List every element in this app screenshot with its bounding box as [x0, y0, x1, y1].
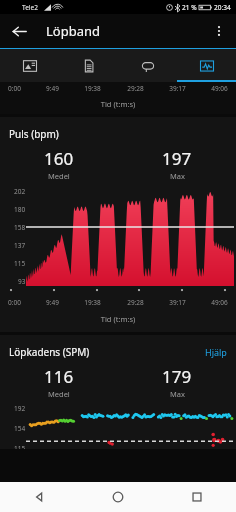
staticText: 93 — [18, 277, 26, 286]
staticText: 0:00 — [8, 84, 21, 93]
button[interactable]: Home — [78, 482, 157, 512]
staticText: 20:34 — [214, 3, 231, 12]
staticText: 29:28 — [127, 84, 144, 93]
staticText: 115 — [14, 259, 26, 268]
button[interactable]: Hjälp — [205, 346, 227, 358]
staticText: Max — [170, 171, 185, 181]
staticText: 197 — [162, 147, 192, 170]
staticText: 49:06 — [211, 298, 228, 307]
staticText: 29:28 — [127, 298, 144, 307]
staticText: 21 % — [182, 3, 197, 12]
button[interactable]: Laps — [118, 49, 177, 82]
button[interactable]: Recents — [157, 482, 236, 512]
staticText: Max — [170, 389, 185, 399]
staticText: 39:17 — [169, 84, 186, 93]
staticText: 158 — [14, 223, 26, 232]
staticText: 39:17 — [169, 298, 186, 307]
staticText: Löpkadens (SPM) — [9, 345, 205, 359]
staticText: 192 — [14, 404, 26, 413]
staticText: 116 — [44, 365, 74, 388]
staticText: 179 — [162, 365, 192, 388]
staticText: 19:38 — [84, 84, 101, 93]
staticText: Tid (t:m:s) — [0, 99, 236, 109]
button[interactable]: Details — [59, 49, 118, 82]
button[interactable]: Back — [0, 482, 78, 512]
button[interactable]: Back — [6, 18, 32, 44]
button[interactable]: Charts — [177, 49, 236, 82]
staticText: Tid (t:m:s) — [0, 314, 236, 324]
staticText: Hjälp — [205, 346, 227, 358]
staticText: 154 — [14, 424, 26, 433]
button[interactable]: Map — [0, 49, 59, 82]
staticText: Tele2 — [22, 3, 38, 12]
staticText: 49:06 — [211, 84, 228, 93]
staticText: 9:49 — [46, 298, 59, 307]
staticText: Medel — [48, 389, 70, 399]
staticText: Puls (bpm) — [9, 127, 59, 141]
staticText: 115 — [14, 444, 26, 449]
staticText: 9:49 — [46, 84, 59, 93]
button[interactable]: More options — [206, 18, 232, 44]
staticText: 0:00 — [8, 298, 21, 307]
staticText: 180 — [14, 205, 26, 214]
staticText: 160 — [44, 147, 74, 170]
staticText: Löpband — [46, 22, 100, 40]
staticText: Medel — [48, 171, 70, 181]
staticText: 19:38 — [84, 298, 101, 307]
staticText: 202 — [14, 187, 26, 196]
staticText: 137 — [14, 241, 26, 250]
